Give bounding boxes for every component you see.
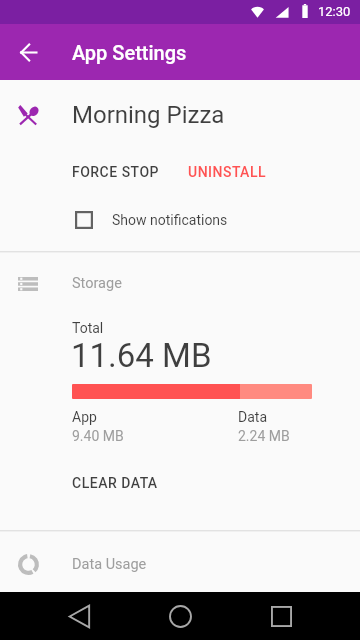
- button[interactable]: Home: [156, 592, 204, 640]
- button[interactable]: Show notifications: [0, 200, 360, 240]
- button[interactable]: Data Usage: [0, 540, 360, 588]
- staticText: 11.64 MB: [71, 336, 212, 375]
- staticText: FORCE STOP: [72, 164, 160, 180]
- staticText: 12:30: [318, 4, 351, 19]
- button[interactable]: CLEAR DATA: [60, 468, 170, 498]
- button[interactable]: Back: [55, 592, 103, 640]
- staticText: Data: [238, 409, 267, 425]
- staticText: Total: [72, 320, 104, 336]
- staticText: Data Usage: [72, 556, 147, 573]
- staticText: Show notifications: [112, 212, 228, 228]
- staticText: 2.24 MB: [238, 428, 290, 444]
- button[interactable]: Navigate up: [4, 28, 52, 76]
- staticText: UNINSTALL: [188, 164, 267, 180]
- staticText: Morning Pizza: [72, 101, 225, 129]
- button[interactable]: UNINSTALL: [176, 157, 279, 187]
- staticText: App Settings: [72, 41, 187, 64]
- button[interactable]: FORCE STOP: [60, 157, 172, 187]
- staticText: Storage: [72, 275, 122, 292]
- staticText: CLEAR DATA: [72, 475, 158, 491]
- staticText: App: [72, 409, 97, 425]
- staticText: 9.40 MB: [72, 428, 124, 444]
- button[interactable]: Recent apps: [257, 592, 305, 640]
